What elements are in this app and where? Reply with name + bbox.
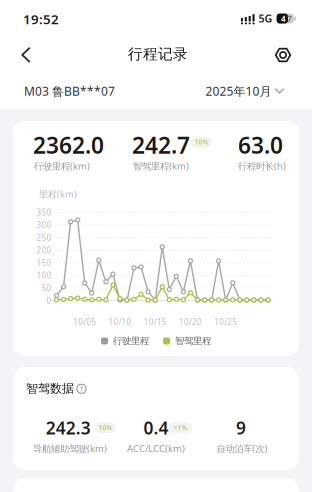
staticText: 100 — [36, 270, 51, 281]
staticText: M03 鲁BB***07 — [24, 83, 115, 99]
staticText: 242.3 — [46, 416, 91, 439]
button[interactable]: 选择月份 — [205, 83, 284, 99]
staticText: 0 — [46, 295, 51, 306]
staticText: 63.0 — [238, 130, 283, 160]
staticText: 10/20 — [179, 317, 202, 327]
staticText: 19:52 — [23, 10, 59, 28]
staticText: 7 — [287, 13, 292, 24]
staticText: 10% — [194, 138, 208, 146]
staticText: 自动泊车(次) — [216, 442, 267, 455]
staticText: 150 — [36, 257, 51, 268]
staticText: <1% — [173, 423, 187, 432]
staticText: 行驶里程(km) — [34, 160, 90, 172]
staticText: 10% — [98, 423, 112, 432]
staticText: 10/25 — [214, 317, 237, 327]
staticText: 10/15 — [144, 317, 167, 327]
staticText: 242.7 — [132, 130, 190, 160]
staticText: 10/10 — [108, 317, 131, 327]
staticText: ? — [80, 384, 83, 393]
staticText: 行程时长(h) — [238, 160, 286, 172]
staticText: ACC/LCC(km) — [127, 442, 185, 455]
staticText: 2362.0 — [33, 130, 104, 160]
staticText: 里程(km) — [39, 188, 77, 200]
staticText: 智驾里程(km) — [133, 160, 189, 172]
staticText: 350 — [36, 207, 51, 218]
button[interactable]: Back — [0, 32, 40, 76]
staticText: 300 — [36, 220, 51, 230]
staticText: 行程记录 — [128, 45, 188, 63]
button[interactable]: 智驾数据说明 — [76, 384, 86, 394]
staticText: 5G — [258, 11, 272, 25]
button[interactable]: Settings — [263, 32, 303, 76]
staticText: 250 — [36, 232, 51, 243]
staticText: 4 — [281, 13, 286, 24]
staticText: 50 — [41, 283, 51, 293]
staticText: 9 — [236, 416, 246, 439]
staticText: 导航辅助驾驶(km) — [33, 442, 107, 455]
staticText: 0.4 — [143, 416, 168, 439]
staticText: 智驾里程 — [175, 335, 211, 347]
staticText: 行驶里程 — [113, 335, 149, 347]
staticText: 2025年10月 — [205, 83, 271, 99]
staticText: 200 — [36, 245, 51, 255]
staticText: 智驾数据 — [26, 381, 74, 396]
staticText: 10/05 — [73, 317, 96, 327]
